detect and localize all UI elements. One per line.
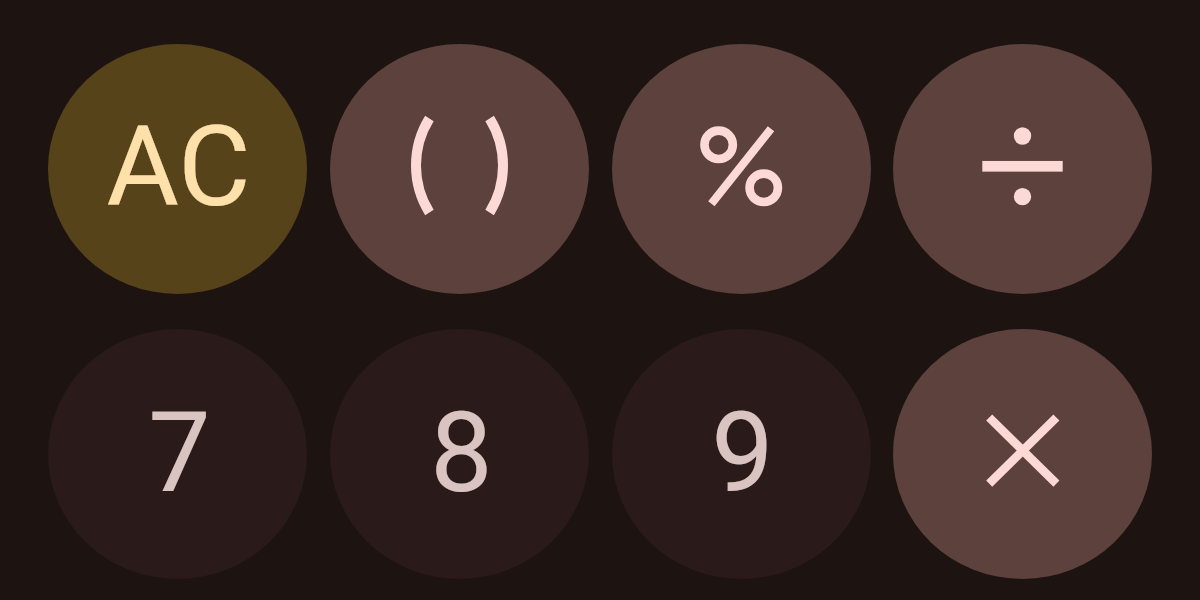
button[interactable]: Percent: [612, 44, 871, 294]
staticText: AC: [106, 102, 251, 232]
button[interactable]: All clear: [48, 44, 307, 294]
staticText: 9: [711, 388, 774, 518]
staticText: 8: [430, 388, 493, 518]
staticText: 7: [148, 388, 211, 518]
button[interactable]: Eight: [330, 329, 589, 579]
button[interactable]: Nine: [612, 329, 871, 579]
button[interactable]: Seven: [48, 329, 307, 579]
button[interactable]: Parentheses: [330, 44, 589, 294]
button[interactable]: Multiply: [893, 329, 1152, 579]
button[interactable]: Divide: [893, 44, 1152, 294]
